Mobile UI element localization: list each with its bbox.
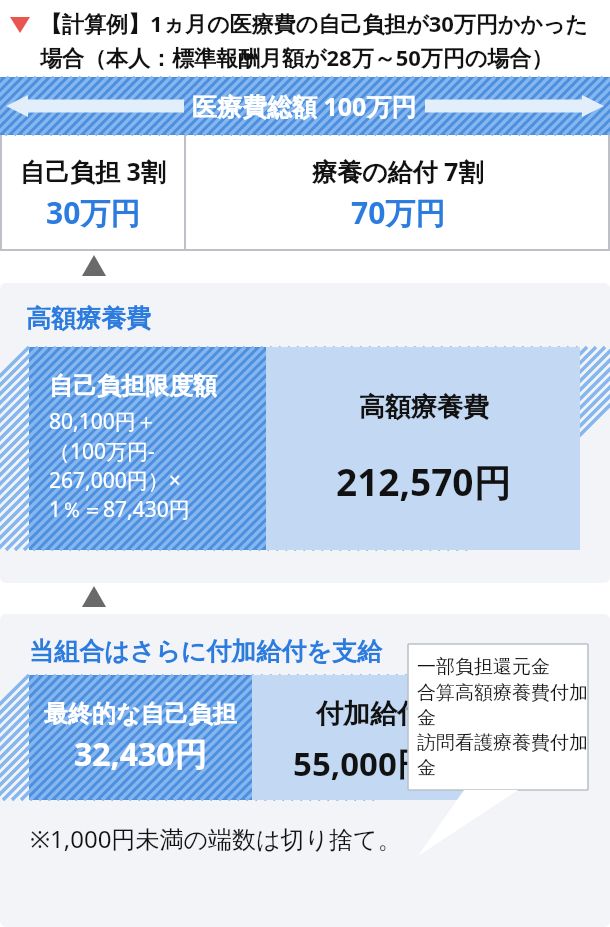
- button[interactable]: 自己負担 3割: [0, 135, 186, 251]
- staticText: 高額療養費: [359, 391, 489, 424]
- staticText: 付加給付: [316, 697, 424, 731]
- button[interactable]: 一部負担還元金 合算高額療養費付加金 訪問看護療養費付加金: [417, 655, 588, 779]
- staticText: 療養の給付 7割: [312, 154, 484, 188]
- staticText: 自己負担限度額: [49, 371, 217, 401]
- staticText: ※: [430, 759, 447, 786]
- button[interactable]: 療養の給付 7割: [186, 135, 610, 251]
- staticText: 80,100円＋ （100万円- 267,000円）× 1％＝87,430円: [49, 407, 190, 523]
- staticText: ※1,000円未満の端数は切り捨て。: [30, 822, 402, 855]
- staticText: 高額療養費: [26, 303, 151, 334]
- staticText: 自己負担 3割: [20, 154, 166, 188]
- staticText: 70万円: [351, 192, 446, 233]
- staticText: 30万円: [46, 192, 141, 233]
- staticText: 医療費総額 100万円: [192, 89, 417, 123]
- button[interactable]: 高額療養費: [266, 347, 580, 550]
- button[interactable]: 自己負担限度額: [29, 347, 266, 550]
- staticText: 当組合はさらに付加給付を支給: [29, 636, 382, 667]
- staticText: 55,000円: [293, 741, 430, 786]
- button[interactable]: 最終的な自己負担: [29, 675, 252, 800]
- staticText: 一部負担還元金 合算高額療養費付加金 訪問看護療養費付加金: [417, 655, 588, 779]
- button[interactable]: 付加給付: [252, 675, 488, 800]
- staticText: 最終的な自己負担: [44, 699, 237, 729]
- staticText: 【計算例】1ヵ月の医療費の自己負担が30万円かかった場合（本人：標準報酬月額が2…: [40, 8, 598, 72]
- staticText: 32,430円: [74, 732, 207, 776]
- staticText: 212,570円: [336, 456, 511, 507]
